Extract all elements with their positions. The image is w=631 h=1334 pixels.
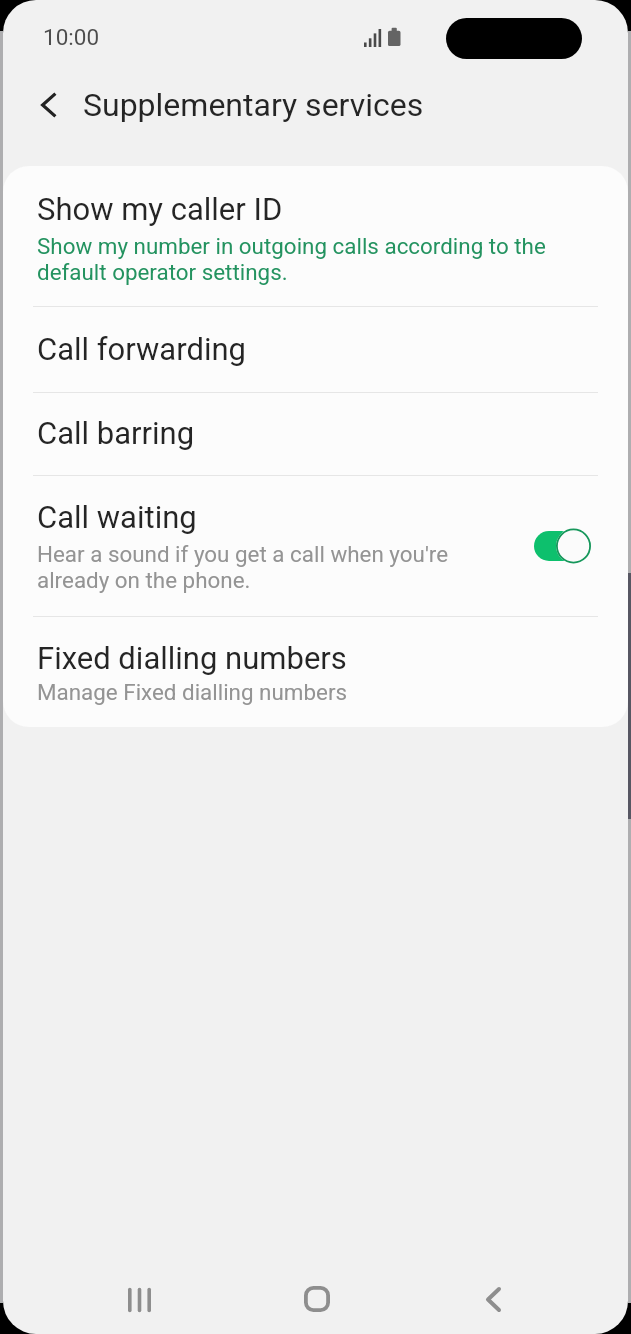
staticText: Fixed dialling numbers bbox=[37, 640, 347, 676]
button[interactable]: Call barring bbox=[3, 393, 628, 475]
staticText: 10:00 bbox=[43, 24, 100, 50]
staticText: Hear a sound if you get a call when you'… bbox=[37, 541, 507, 593]
button[interactable]: Show my caller ID bbox=[3, 166, 628, 306]
staticText: Show my number in outgoing calls accordi… bbox=[37, 233, 597, 285]
staticText: Call waiting bbox=[37, 499, 197, 535]
staticText: Manage Fixed dialling numbers bbox=[37, 679, 348, 705]
button[interactable]: Navigate up bbox=[14, 70, 84, 140]
button[interactable]: Call forwarding bbox=[3, 307, 628, 392]
staticText: Supplementary services bbox=[83, 86, 424, 124]
staticText: Show my caller ID bbox=[37, 191, 283, 227]
button[interactable]: Fixed dialling numbers bbox=[3, 617, 628, 727]
staticText: Call forwarding bbox=[37, 331, 246, 367]
button[interactable]: Call waiting on bbox=[534, 528, 591, 564]
staticText: Call barring bbox=[37, 415, 195, 451]
button[interactable]: Back bbox=[449, 1266, 537, 1332]
button[interactable]: Home bbox=[273, 1266, 361, 1332]
button[interactable]: Call waiting bbox=[3, 476, 628, 616]
button[interactable]: Recent apps bbox=[95, 1267, 183, 1333]
